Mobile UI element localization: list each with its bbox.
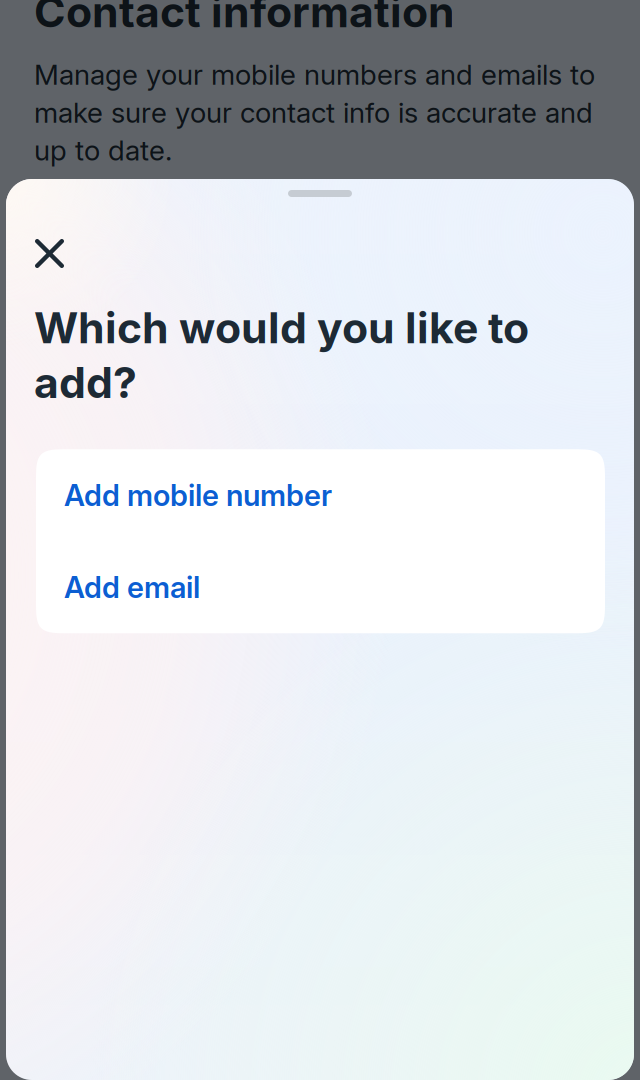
staticText: Contact information (34, 0, 455, 38)
button[interactable]: Add email (36, 541, 605, 633)
button[interactable]: Close (6, 197, 82, 278)
staticText: Add email (64, 569, 200, 605)
staticText: Manage your mobile numbers and emails to… (34, 58, 595, 167)
staticText: Which would you like to add? (34, 302, 529, 408)
button[interactable]: Add mobile number (36, 449, 605, 541)
staticText: Add mobile number (64, 477, 332, 513)
